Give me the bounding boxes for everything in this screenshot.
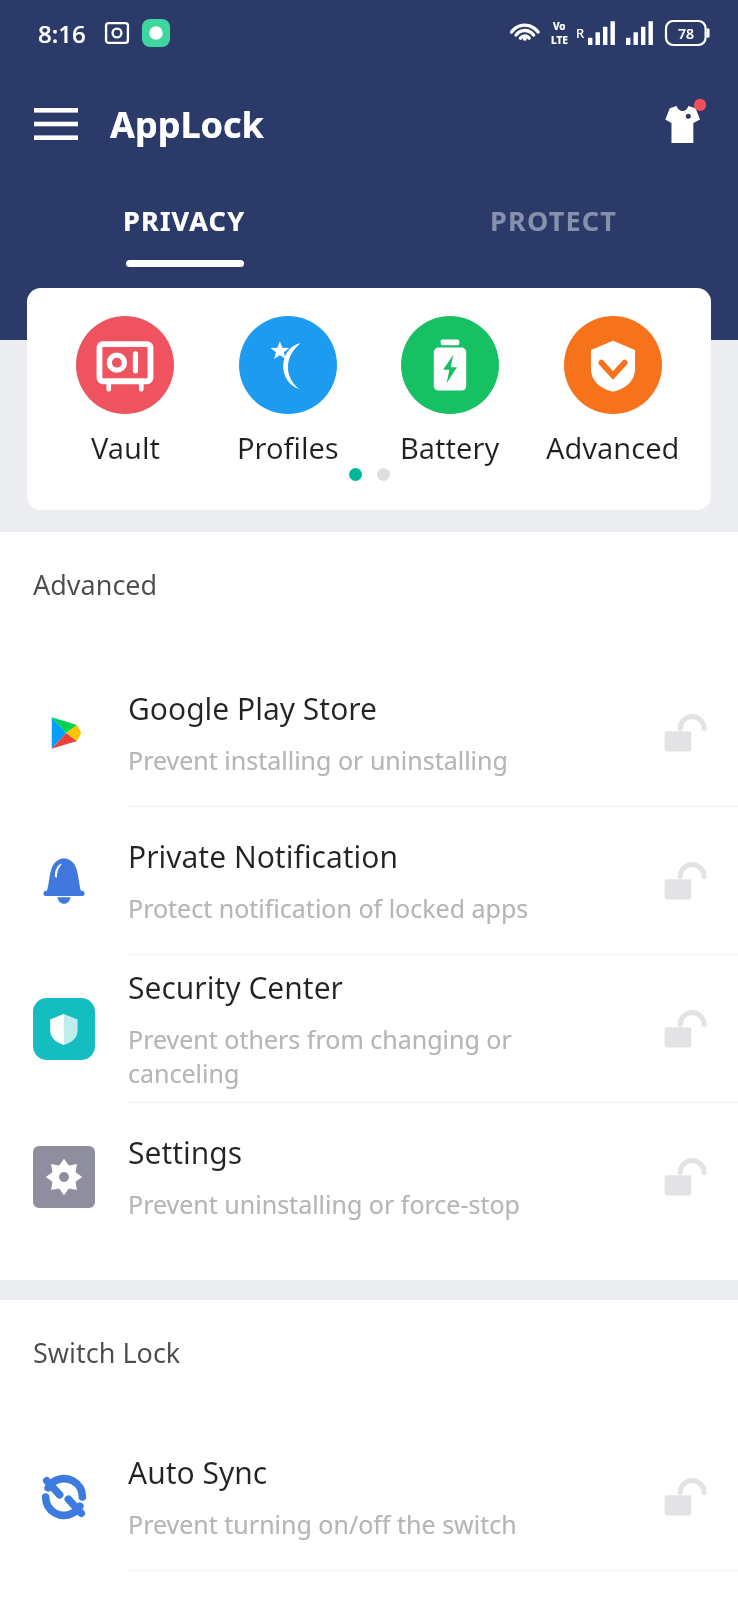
staticText: PROTECT [490, 202, 618, 239]
staticText: Auto Sync [128, 1452, 268, 1493]
button[interactable]: Security Center [0, 955, 738, 1102]
button[interactable]: Private Notification [0, 807, 738, 954]
staticText: Settings [128, 1132, 243, 1173]
button[interactable]: Toggle lock for Settings [628, 1103, 738, 1250]
staticText: Battery [400, 428, 500, 467]
staticText: 78 [678, 24, 695, 43]
staticText: Prevent uninstalling or force-stop [128, 1187, 520, 1221]
staticText: Security Center [128, 967, 343, 1008]
button[interactable]: Open navigation menu [24, 92, 88, 156]
button[interactable]: Toggle lock for Google Play Store [628, 659, 738, 806]
button[interactable]: Vault [50, 316, 200, 467]
staticText: Google Play Store [128, 688, 378, 729]
button[interactable]: Profiles [213, 316, 363, 467]
button[interactable]: Advanced [538, 316, 688, 467]
staticText: Switch Lock [33, 1334, 181, 1371]
staticText: Prevent turning on/off the switch [128, 1507, 517, 1541]
button[interactable]: PROTECT [369, 188, 738, 272]
staticText: Advanced [33, 566, 158, 603]
staticText: PRIVACY [123, 202, 246, 239]
staticText: R [576, 24, 585, 42]
button[interactable]: Toggle lock for Private Notification [628, 807, 738, 954]
staticText: Advanced [546, 428, 680, 467]
staticText: Vo [553, 19, 566, 33]
button[interactable]: PRIVACY [0, 188, 369, 272]
button[interactable]: Google Play Store [0, 659, 738, 806]
button[interactable]: Toggle lock for Auto Sync [628, 1423, 738, 1570]
button[interactable]: Battery [375, 316, 525, 467]
button[interactable]: Themes [648, 91, 714, 157]
staticText: Profiles [237, 428, 339, 467]
staticText: Vault [91, 428, 160, 467]
staticText: AppLock [110, 100, 264, 149]
staticText: Prevent installing or uninstalling [128, 743, 508, 777]
staticText: Private Notification [128, 836, 398, 877]
staticText: LTE [551, 33, 568, 47]
staticText: 8:16 [38, 17, 86, 50]
button[interactable]: Auto Sync [0, 1423, 738, 1570]
button[interactable]: Toggle lock for Security Center [628, 955, 738, 1102]
staticText: Prevent others from changing or cancelin… [128, 1022, 628, 1090]
button[interactable]: Settings [0, 1103, 738, 1250]
staticText: Protect notification of locked apps [128, 891, 529, 925]
